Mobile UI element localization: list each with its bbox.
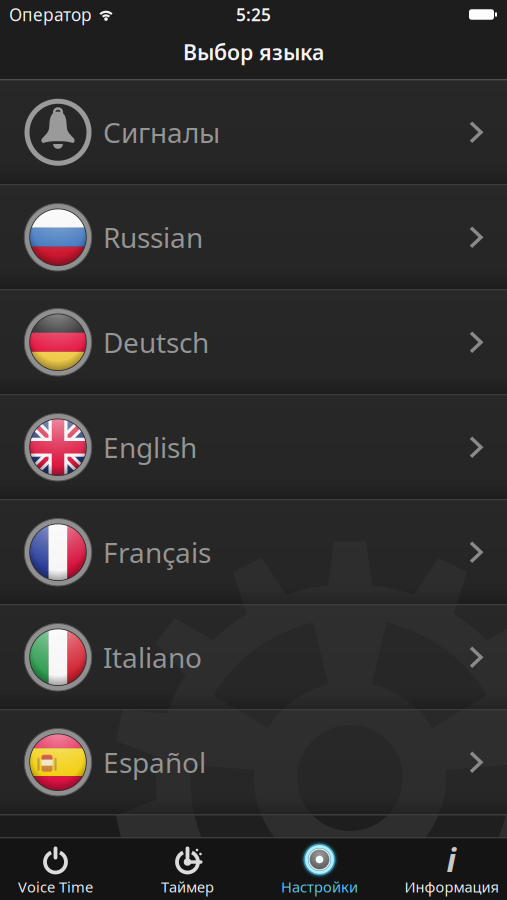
staticText: Информация <box>404 877 498 896</box>
button[interactable]: Сигналы <box>0 80 507 185</box>
staticText: Deutsch <box>103 324 209 361</box>
staticText: Français <box>103 534 211 571</box>
button[interactable]: Français <box>0 500 507 605</box>
staticText: Сигналы <box>103 114 220 151</box>
staticText: Español <box>103 744 206 781</box>
button[interactable]: Deutsch <box>0 290 507 395</box>
staticText: i <box>446 838 456 881</box>
staticText: Таймер <box>161 877 214 896</box>
button[interactable]: Voice Time <box>0 843 121 896</box>
staticText: English <box>103 429 197 466</box>
staticText: Настройки <box>281 877 358 896</box>
staticText: 5:25 <box>236 3 271 26</box>
button[interactable]: Таймер <box>121 843 253 896</box>
staticText: Russian <box>103 219 203 256</box>
button[interactable]: i <box>385 843 507 896</box>
button[interactable]: Настройки <box>253 843 385 896</box>
button[interactable]: Italiano <box>0 605 507 710</box>
staticText: Italiano <box>103 639 202 676</box>
staticText: Оператор <box>9 3 92 26</box>
button[interactable]: English <box>0 395 507 500</box>
staticText: Выбор языка <box>183 38 324 66</box>
button[interactable]: Russian <box>0 185 507 290</box>
button[interactable]: Español <box>0 710 507 815</box>
staticText: Voice Time <box>18 877 93 896</box>
